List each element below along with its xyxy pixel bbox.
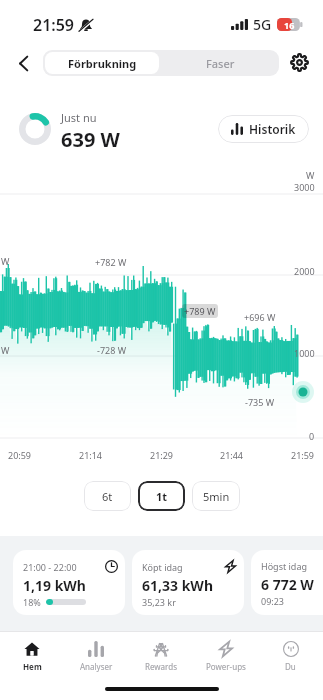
staticText: 6t	[102, 489, 113, 504]
staticText: Historik	[249, 121, 296, 137]
staticText: +782 W	[95, 256, 127, 268]
staticText: 1000	[294, 347, 315, 359]
button[interactable]: Köpt idag	[132, 550, 244, 615]
button[interactable]: Du	[258, 636, 323, 676]
staticText: 09:23	[261, 595, 285, 607]
button[interactable]: 1t	[138, 481, 185, 511]
staticText: Förbrukning	[68, 56, 137, 71]
staticText: W	[1, 344, 10, 356]
staticText: Just nu	[61, 110, 97, 125]
button[interactable]: 6t	[84, 481, 131, 511]
staticText: 21:00 - 22:00	[23, 561, 77, 573]
button[interactable]: Faser	[161, 50, 279, 76]
staticText: 21:44	[220, 449, 244, 461]
staticText: Analyser	[80, 661, 113, 672]
staticText: 21:59	[291, 449, 315, 461]
staticText: Du	[285, 661, 296, 672]
staticText: 21:14	[79, 449, 103, 461]
staticText: 1,19 kWh	[23, 576, 86, 595]
staticText: W	[306, 169, 315, 181]
button[interactable]: Back	[8, 48, 38, 78]
staticText: +789 W	[184, 305, 216, 317]
button[interactable]: Hem	[0, 636, 64, 676]
button[interactable]: Settings	[285, 48, 313, 76]
staticText: 0	[309, 430, 315, 442]
staticText: W	[1, 255, 10, 267]
staticText: 3000	[294, 181, 315, 193]
button[interactable]: Högst idag	[251, 550, 323, 615]
staticText: 21:59	[33, 14, 75, 36]
button[interactable]: Analyser	[64, 636, 128, 676]
staticText: 20:59	[8, 449, 32, 461]
button[interactable]: Historik	[218, 115, 309, 143]
staticText: 61,33 kWh	[142, 576, 213, 595]
staticText: -728 W	[97, 344, 127, 356]
staticText: Rewards	[145, 661, 177, 672]
staticText: Power-ups	[206, 661, 246, 672]
staticText: +696 W	[244, 311, 276, 323]
button[interactable]: 21:00 - 22:00	[13, 550, 125, 615]
staticText: 1t	[156, 489, 168, 504]
staticText: 6 772 W	[261, 575, 314, 594]
staticText: 16	[284, 19, 295, 31]
staticText: 21:29	[150, 449, 174, 461]
staticText: Köpt idag	[142, 561, 183, 573]
staticText: 35,23 kr	[142, 596, 176, 608]
staticText: 639 W	[61, 126, 120, 153]
button[interactable]: 5min	[192, 481, 240, 511]
staticText: 5min	[203, 489, 230, 504]
staticText: Hem	[23, 661, 42, 672]
button[interactable]: Power-ups	[193, 636, 258, 676]
staticText: Faser	[206, 56, 235, 71]
staticText: -735 W	[245, 396, 275, 408]
staticText: 5G	[253, 15, 272, 34]
button[interactable]: Rewards	[128, 636, 193, 676]
staticText: Högst idag	[261, 560, 307, 572]
staticText: 18%	[23, 596, 41, 608]
staticText: 2000	[294, 265, 315, 277]
button[interactable]: Förbrukning	[45, 52, 159, 74]
